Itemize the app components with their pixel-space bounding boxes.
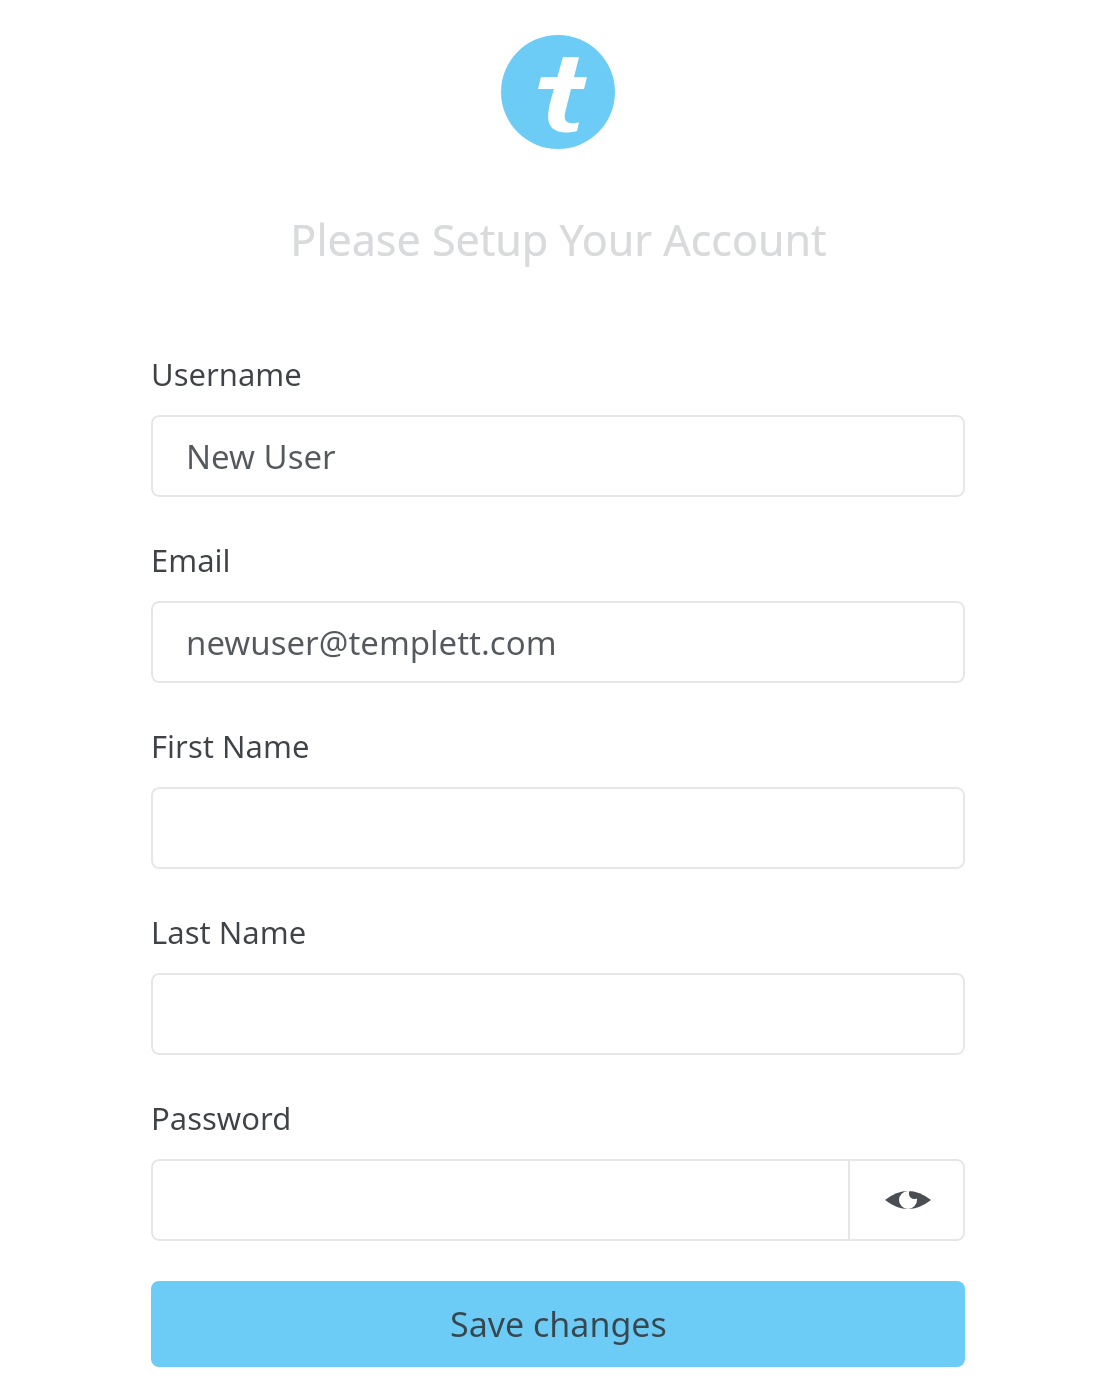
staticText: Username xyxy=(151,353,302,395)
button[interactable] xyxy=(151,973,965,1055)
button[interactable]: newuser@templett.com xyxy=(151,601,965,683)
button[interactable]: Save changes xyxy=(151,1281,965,1367)
button[interactable]: Templett logo xyxy=(501,35,615,149)
button[interactable]: Show password xyxy=(850,1159,965,1241)
staticText: Email xyxy=(151,539,231,581)
button[interactable] xyxy=(151,1159,848,1241)
staticText: New User xyxy=(186,434,336,479)
staticText: Please Setup Your Account xyxy=(290,210,827,269)
staticText: First Name xyxy=(151,725,310,767)
button[interactable]: New User xyxy=(151,415,965,497)
staticText: newuser@templett.com xyxy=(186,620,557,665)
staticText: Save changes xyxy=(450,1301,667,1347)
staticText: Last Name xyxy=(151,911,307,953)
button[interactable] xyxy=(151,787,965,869)
staticText: Password xyxy=(151,1097,292,1139)
